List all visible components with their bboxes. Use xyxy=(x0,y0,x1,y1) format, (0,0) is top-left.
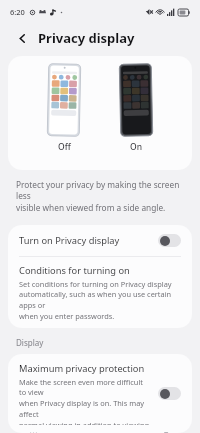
button[interactable]: Back xyxy=(13,29,31,47)
button[interactable]: Toggle xyxy=(158,234,181,247)
staticText: Make the screen even more difficult to v… xyxy=(19,377,152,425)
staticText: Set conditions for turning on Privacy di… xyxy=(19,279,181,321)
staticText: Protect your privacy by making the scree… xyxy=(16,179,186,214)
button[interactable]: Turn on Privacy display xyxy=(8,225,192,256)
staticText: Display xyxy=(16,337,44,348)
staticText: Maximum privacy protection xyxy=(19,362,145,375)
staticText: Off xyxy=(58,141,71,153)
staticText: 6:20 xyxy=(10,7,25,17)
button[interactable]: Maximum privacy protection xyxy=(8,354,192,433)
button[interactable]: Toggle xyxy=(158,387,181,400)
staticText: On xyxy=(130,141,142,153)
staticText: Conditions for turning on xyxy=(19,264,130,277)
staticText: Turn on Privacy display xyxy=(19,234,158,247)
button[interactable]: Conditions for turning on xyxy=(8,257,192,328)
staticText: Privacy display xyxy=(38,29,135,47)
